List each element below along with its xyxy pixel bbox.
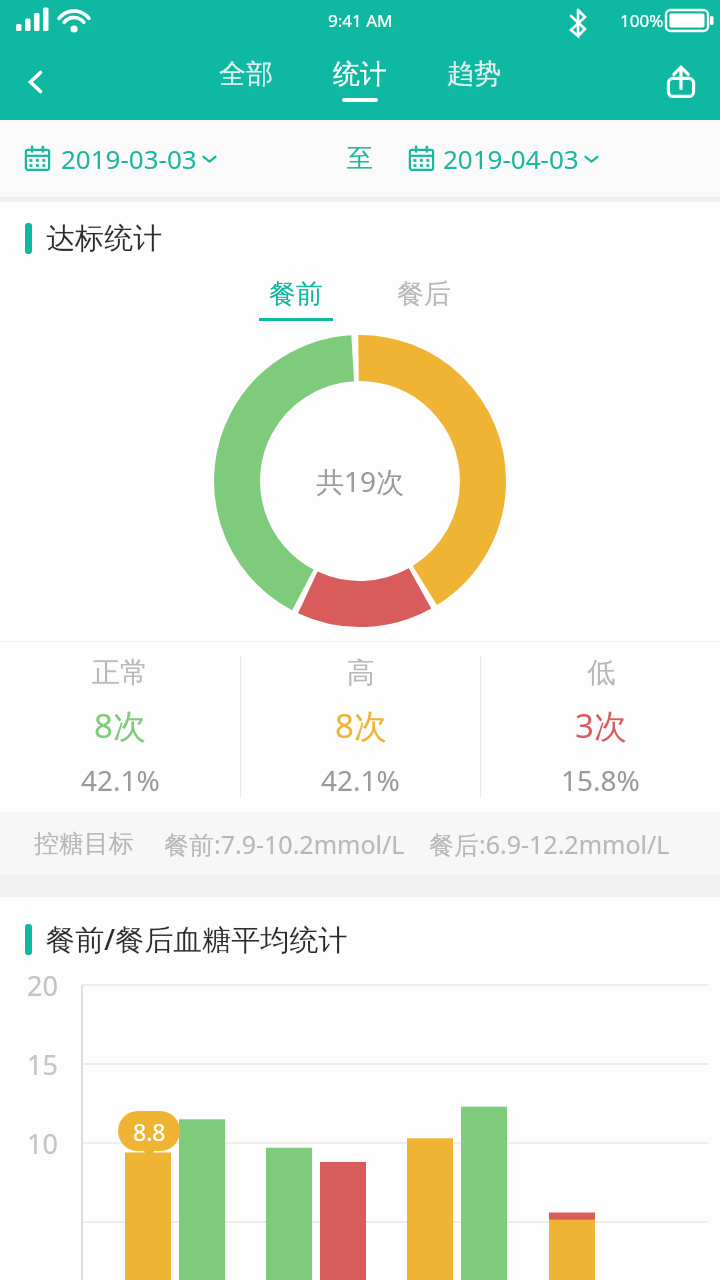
- staticText: 8次: [94, 703, 146, 748]
- button[interactable]: Share: [642, 44, 720, 120]
- staticText: 餐前:7.9-10.2mmol/L: [164, 827, 405, 861]
- button[interactable]: 趋势: [439, 53, 509, 106]
- button[interactable]: 低: [481, 642, 720, 812]
- staticText: 3次: [575, 703, 627, 748]
- staticText: 42.1%: [321, 761, 400, 799]
- button[interactable]: Back: [0, 44, 72, 120]
- staticText: 15: [27, 1046, 58, 1083]
- staticText: 15.8%: [561, 761, 640, 799]
- staticText: 控糖目标: [34, 828, 134, 859]
- staticText: 餐前: [269, 277, 323, 311]
- staticText: 10: [27, 1125, 58, 1162]
- staticText: 餐后: [397, 277, 451, 311]
- staticText: 低: [587, 655, 615, 690]
- staticText: 趋势: [447, 57, 501, 91]
- button[interactable]: 餐后: [381, 277, 467, 321]
- button[interactable]: 高: [241, 642, 480, 812]
- staticText: 8.8: [133, 1116, 166, 1147]
- button[interactable]: 统计: [325, 53, 395, 106]
- staticText: 2019-03-03: [61, 141, 197, 176]
- button[interactable]: 正常: [0, 642, 240, 812]
- staticText: 2019-04-03: [443, 141, 579, 176]
- staticText: 正常: [92, 655, 148, 690]
- button[interactable]: 2019-04-03: [408, 120, 720, 197]
- staticText: 共19次: [316, 462, 405, 500]
- staticText: 统计: [333, 57, 387, 91]
- button[interactable]: 餐前: [253, 277, 339, 321]
- button[interactable]: 2019-03-03: [0, 120, 312, 197]
- staticText: 20: [27, 967, 58, 1004]
- staticText: 9:41 AM: [328, 9, 393, 32]
- button[interactable]: 全部: [211, 53, 281, 106]
- staticText: 42.1%: [81, 761, 160, 799]
- staticText: 餐后:6.9-12.2mmol/L: [429, 827, 670, 861]
- staticText: 餐前/餐后血糖平均统计: [46, 919, 348, 959]
- staticText: 全部: [219, 57, 273, 91]
- staticText: 至: [347, 142, 373, 175]
- staticText: 8次: [335, 703, 387, 748]
- staticText: 达标统计: [46, 220, 162, 257]
- staticText: 100%: [620, 9, 664, 32]
- staticText: 高: [347, 655, 375, 690]
